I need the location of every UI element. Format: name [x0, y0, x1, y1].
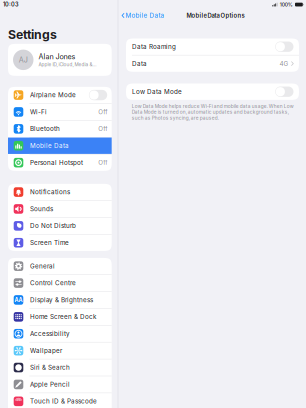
staticText: Home Screen & Dock	[30, 313, 96, 321]
staticText: Accessibility	[30, 330, 70, 338]
staticText: AA	[14, 297, 22, 303]
staticText: Mobile Data	[126, 12, 165, 19]
staticText: 10:03	[3, 1, 19, 8]
button[interactable]: Home Screen & Dock	[8, 309, 112, 325]
staticText: 100%	[280, 1, 293, 8]
button[interactable]: Data Roaming	[126, 38, 299, 55]
button[interactable]: Mobile Data	[8, 137, 112, 154]
staticText: 4G	[280, 60, 289, 67]
button[interactable]: Mobile Data	[118, 11, 165, 20]
staticText: Mobile Data Options	[187, 12, 245, 19]
staticText: Display & Brightness	[30, 296, 93, 304]
button[interactable]: Notifications	[8, 184, 112, 200]
staticText: Siri & Search	[30, 364, 70, 371]
button[interactable]: Data	[126, 55, 299, 72]
button[interactable]: Siri & Search	[8, 359, 112, 376]
staticText: Do Not Disturb	[30, 222, 76, 230]
button[interactable]: Touch ID & Passcode	[8, 393, 112, 408]
button[interactable]: Control Centre	[8, 275, 112, 291]
staticText: General	[30, 262, 55, 270]
staticText: Off	[98, 125, 107, 132]
staticText: Settings	[8, 27, 57, 42]
button[interactable]: Screen Time	[8, 234, 112, 251]
button[interactable]: Sounds	[8, 201, 112, 217]
button[interactable]: Do Not Disturb	[8, 218, 112, 234]
staticText: Data Roaming	[132, 43, 176, 50]
staticText: Control Centre	[30, 279, 76, 287]
staticText: AJ	[19, 55, 28, 64]
staticText: Touch ID & Passcode	[30, 398, 97, 405]
staticText: Off	[98, 159, 107, 166]
staticText: Personal Hotspot	[30, 159, 83, 166]
button[interactable]: Low Data Mode	[126, 83, 299, 100]
staticText: Notifications	[30, 188, 70, 196]
button[interactable]: Airplane Mode	[8, 87, 112, 103]
staticText: Low Data Mode helps reduce Wi-Fi and mob…	[132, 103, 294, 121]
staticText: Off	[98, 108, 107, 116]
staticText: Wallpaper	[30, 347, 62, 354]
button[interactable]: Bluetooth	[8, 121, 112, 137]
staticText: Screen Time	[30, 239, 69, 247]
button[interactable]: AJ	[8, 44, 112, 76]
staticText: Wi-Fi	[30, 108, 47, 116]
staticText: Airplane Mode	[30, 91, 76, 99]
button[interactable]: General	[8, 258, 112, 274]
button[interactable]: Wi-Fi	[8, 104, 112, 120]
staticText: Mobile Data	[30, 142, 69, 150]
staticText: Bluetooth	[30, 125, 60, 133]
staticText: Data	[132, 60, 147, 67]
button[interactable]: Accessibility	[8, 325, 112, 342]
staticText: Apple ID, iCloud, Media &…	[38, 62, 96, 67]
button[interactable]: Apple Pencil	[8, 376, 112, 393]
button[interactable]: Wallpaper	[8, 342, 112, 359]
staticText: Sounds	[30, 205, 53, 213]
button[interactable]: AA	[8, 292, 112, 308]
staticText: Low Data Mode	[132, 88, 182, 95]
staticText: Alan Jones	[38, 52, 75, 61]
button[interactable]: Personal Hotspot	[8, 154, 112, 171]
staticText: Apple Pencil	[30, 381, 70, 388]
